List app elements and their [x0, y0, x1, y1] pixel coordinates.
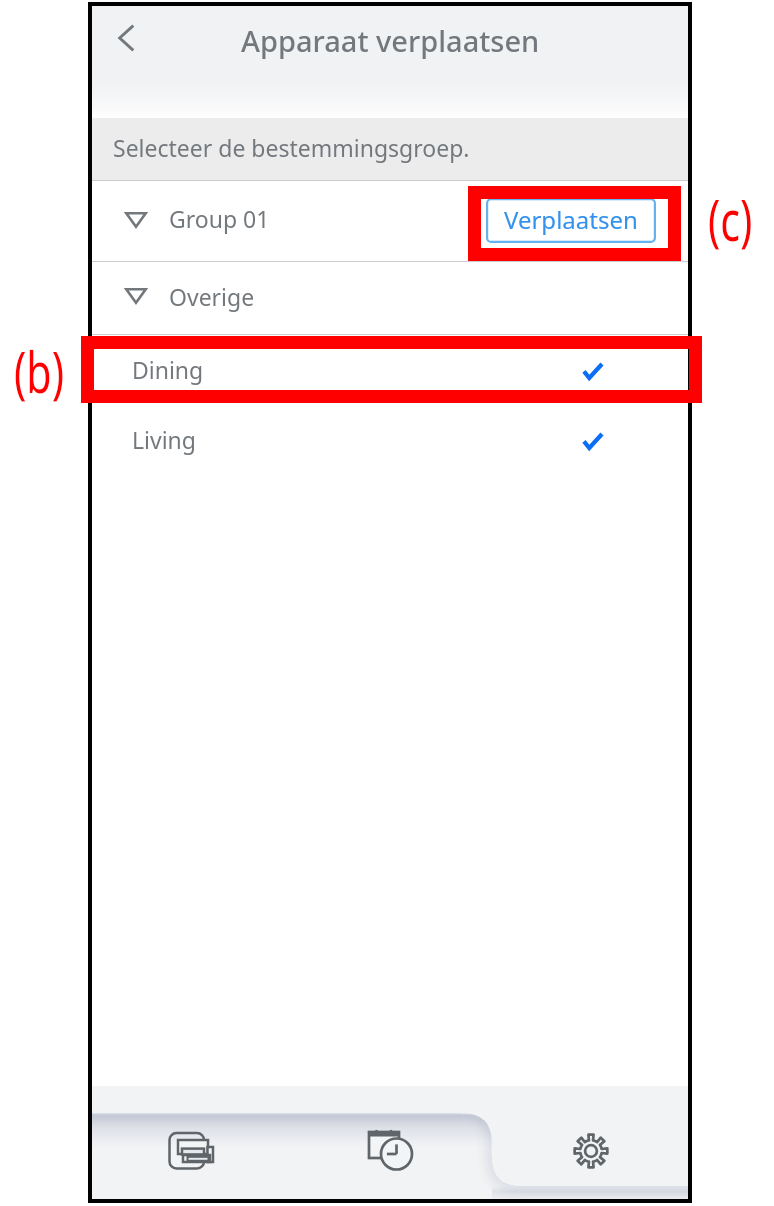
staticText: Selecteer de bestemmingsgroep. — [113, 132, 470, 163]
button[interactable]: Overige — [92, 262, 688, 334]
button[interactable]: Group 01 — [92, 181, 688, 261]
staticText: Living — [132, 424, 196, 455]
button[interactable]: Settings — [489, 1086, 688, 1199]
staticText: Apparaat verplaatsen — [241, 21, 540, 60]
staticText: Group 01 — [169, 203, 270, 234]
button[interactable]: Devices — [92, 1086, 290, 1199]
staticText: Overige — [169, 281, 255, 312]
staticText: (b) — [14, 333, 65, 409]
button[interactable]: Dining — [92, 335, 688, 405]
staticText: (c) — [708, 181, 753, 257]
button[interactable]: Back — [94, 6, 159, 70]
button[interactable]: Living — [92, 405, 688, 475]
staticText: Verplaatsen — [504, 203, 638, 236]
button[interactable]: Verplaatsen — [486, 198, 656, 243]
staticText: Dining — [132, 354, 204, 385]
button[interactable]: Schedule — [290, 1086, 489, 1199]
